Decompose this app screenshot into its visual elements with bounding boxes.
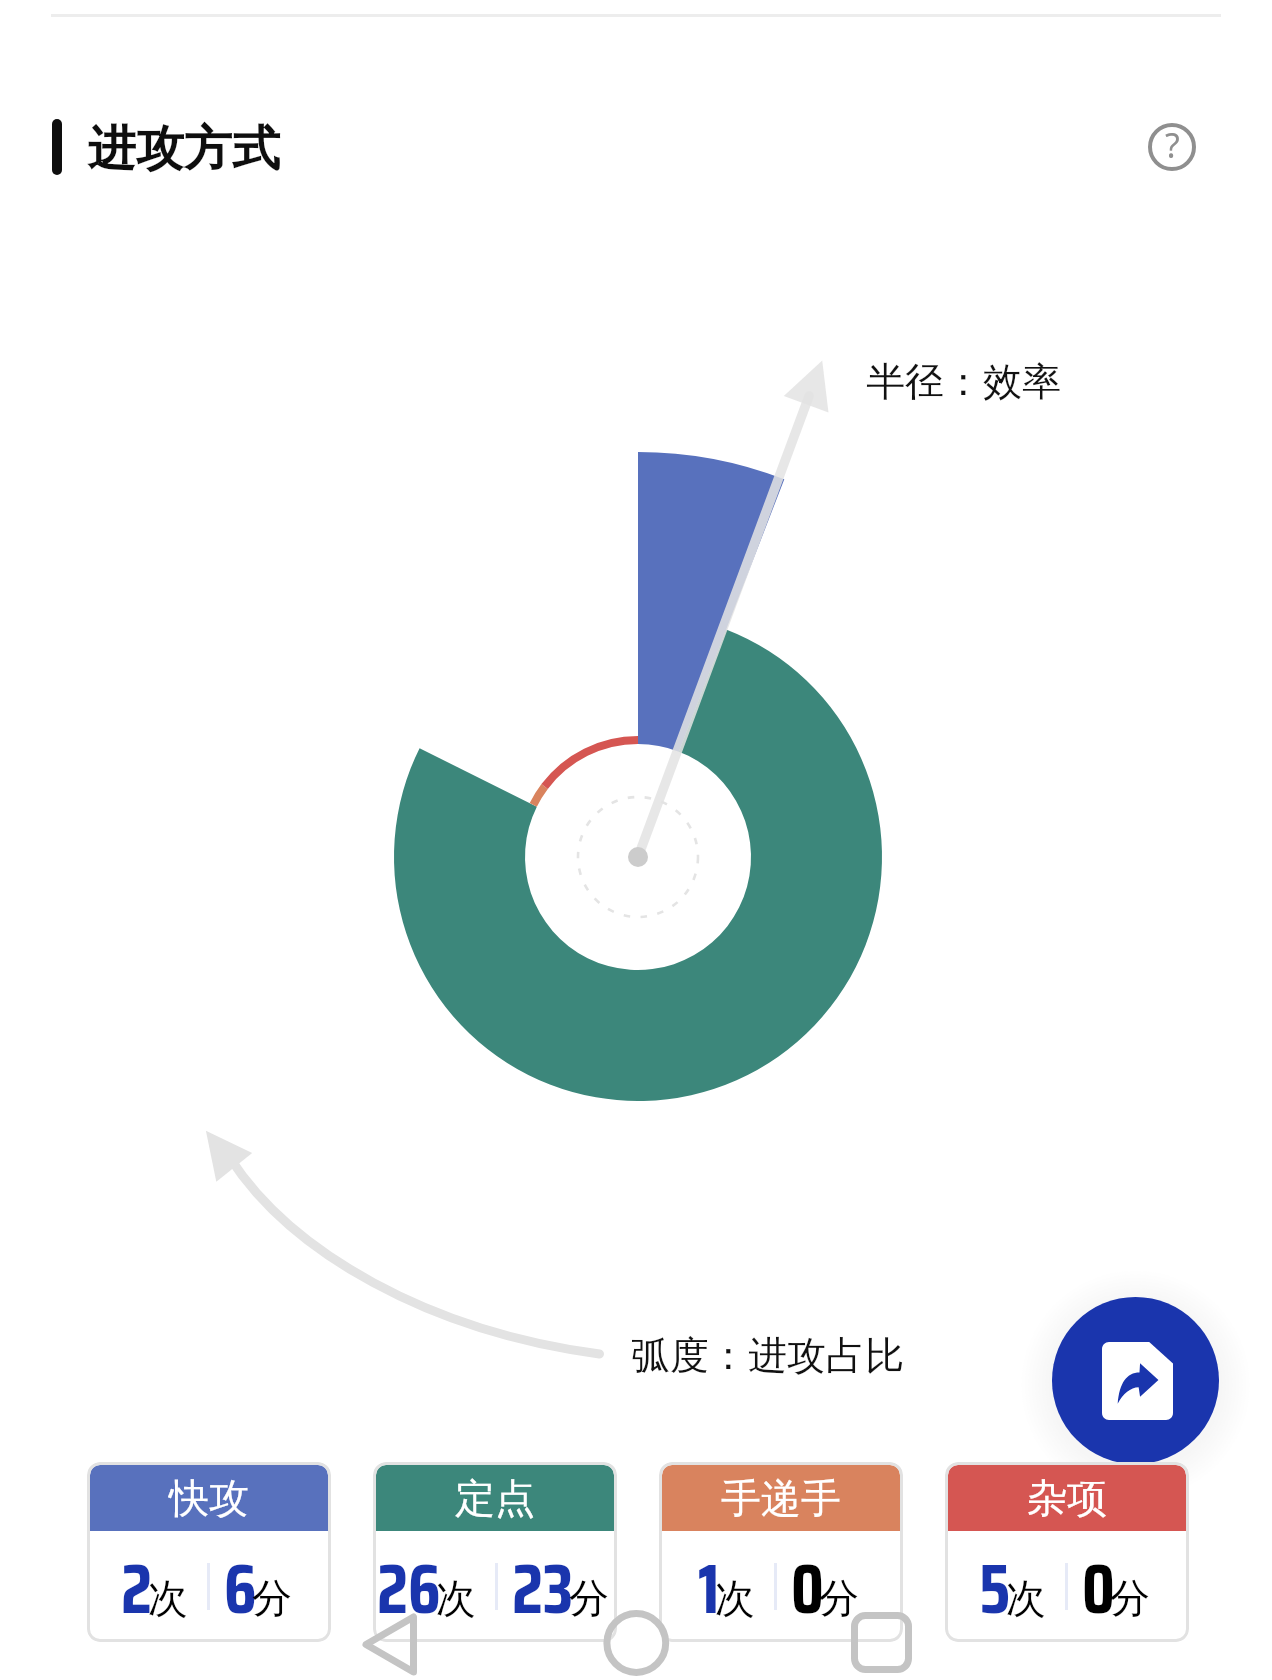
button[interactable]: 杂项 bbox=[945, 1462, 1189, 1642]
staticText: 26 bbox=[377, 1535, 441, 1642]
staticText: ? bbox=[1165, 122, 1180, 168]
staticText: 进攻方式 bbox=[88, 119, 280, 179]
staticText: 分 bbox=[819, 1573, 859, 1623]
button[interactable]: Help bbox=[1143, 118, 1201, 176]
staticText: 6 bbox=[224, 1535, 257, 1642]
staticText: 2 bbox=[121, 1535, 153, 1642]
staticText: 次 bbox=[1006, 1573, 1046, 1623]
staticText: 1 bbox=[698, 1535, 720, 1642]
staticText: 弧度：进攻占比 bbox=[631, 1331, 904, 1380]
staticText: 分 bbox=[569, 1573, 609, 1623]
staticText: 5 bbox=[979, 1535, 1011, 1642]
staticText: 分 bbox=[1110, 1573, 1150, 1623]
staticText: 0 bbox=[1082, 1535, 1115, 1642]
staticText: 次 bbox=[715, 1573, 755, 1623]
staticText: 杂项 bbox=[1027, 1473, 1107, 1523]
button[interactable]: Share bbox=[1052, 1297, 1219, 1464]
staticText: 定点 bbox=[455, 1473, 535, 1523]
staticText: 半径：效率 bbox=[866, 357, 1061, 406]
staticText: 分 bbox=[252, 1573, 292, 1623]
staticText: 23 bbox=[512, 1535, 574, 1642]
button[interactable]: 手递手 bbox=[659, 1462, 903, 1642]
button[interactable]: Home bbox=[564, 1596, 708, 1680]
staticText: 手递手 bbox=[721, 1473, 841, 1523]
staticText: 0 bbox=[791, 1535, 824, 1642]
button[interactable]: 快攻 bbox=[87, 1462, 331, 1642]
button[interactable]: 定点 bbox=[373, 1462, 617, 1642]
button[interactable]: Back bbox=[318, 1596, 462, 1680]
button[interactable]: Recent apps bbox=[810, 1596, 954, 1680]
staticText: 次 bbox=[436, 1573, 476, 1623]
staticText: 快攻 bbox=[169, 1473, 249, 1523]
staticText: 次 bbox=[148, 1573, 188, 1623]
